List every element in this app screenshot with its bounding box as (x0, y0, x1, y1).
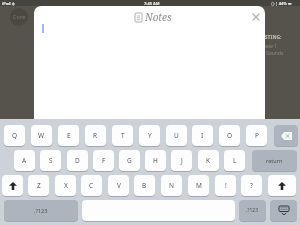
staticText: ww 1 (265, 43, 278, 50)
button[interactable] (268, 175, 296, 196)
staticText: Done (13, 14, 26, 21)
button[interactable]: L (224, 150, 245, 171)
button[interactable] (82, 200, 235, 221)
staticText: N (169, 181, 174, 190)
staticText: .?123 (34, 207, 48, 214)
button[interactable]: R (85, 125, 106, 146)
staticText: .?123 (246, 207, 259, 214)
staticText: L (233, 156, 237, 165)
button[interactable]: ? (241, 175, 262, 196)
staticText: V (117, 181, 121, 190)
staticText: return (266, 157, 283, 164)
staticText: 7:45 AM (144, 1, 160, 6)
button[interactable] (2, 175, 23, 196)
staticText: W (38, 131, 45, 140)
staticText: ? (250, 181, 253, 190)
staticText: X (64, 181, 68, 190)
button[interactable]: T (112, 125, 133, 146)
button[interactable]: G (119, 150, 140, 171)
staticText: Q (12, 131, 18, 140)
button[interactable]: A (14, 150, 35, 171)
button[interactable]: W (31, 125, 52, 146)
staticText: M (196, 181, 202, 190)
staticText: ○ ¦ 44% ▬ (271, 1, 292, 6)
button[interactable]: E (58, 125, 79, 146)
button[interactable]: O (219, 125, 240, 146)
button[interactable]: K (198, 150, 219, 171)
staticText: K (206, 156, 211, 165)
button[interactable]: Y (139, 125, 160, 146)
staticText: J (181, 156, 183, 165)
button[interactable]: return (252, 150, 297, 171)
staticText: Z (37, 181, 41, 190)
button[interactable] (253, 14, 259, 20)
staticText: D (75, 156, 80, 165)
staticText: Notes (145, 10, 172, 24)
staticText: T (121, 131, 125, 140)
button[interactable]: D (67, 150, 88, 171)
button[interactable]: I (192, 125, 213, 146)
staticText: O (227, 131, 233, 140)
button[interactable]: .?123 (4, 200, 78, 221)
staticText: ! (225, 181, 227, 190)
button[interactable]: F (93, 150, 114, 171)
button[interactable]: X (55, 175, 76, 196)
button[interactable]: Z (28, 175, 49, 196)
staticText: P (255, 131, 259, 140)
button[interactable]: P (246, 125, 267, 146)
button[interactable]: C (81, 175, 102, 196)
staticText: C (89, 181, 94, 190)
button[interactable]: J (171, 150, 192, 171)
button[interactable]: .?123 (239, 200, 266, 221)
staticText: R (93, 131, 98, 140)
button[interactable]: N (161, 175, 182, 196)
staticText: B (142, 181, 147, 190)
staticText: A (22, 156, 27, 165)
button[interactable]: M (188, 175, 209, 196)
button[interactable]: S (40, 150, 61, 171)
staticText: Sounds (266, 50, 284, 57)
button[interactable]: Done (10, 8, 28, 26)
staticText: Y (148, 131, 152, 140)
staticText: ESTING: (262, 34, 282, 41)
button[interactable]: U (166, 125, 187, 146)
staticText: G (127, 156, 132, 165)
button[interactable]: B (134, 175, 155, 196)
staticText: S (49, 156, 53, 165)
staticText: E (67, 131, 71, 140)
staticText: F (102, 156, 106, 165)
staticText: iPad ◈ (2, 1, 15, 6)
staticText: I (201, 131, 204, 140)
button[interactable] (270, 200, 297, 221)
staticText: U (174, 131, 179, 140)
button[interactable]: H (145, 150, 166, 171)
button[interactable]: V (108, 175, 129, 196)
button[interactable]: Q (4, 125, 25, 146)
button[interactable] (274, 125, 298, 146)
button[interactable]: ! (215, 175, 236, 196)
staticText: H (153, 156, 158, 165)
